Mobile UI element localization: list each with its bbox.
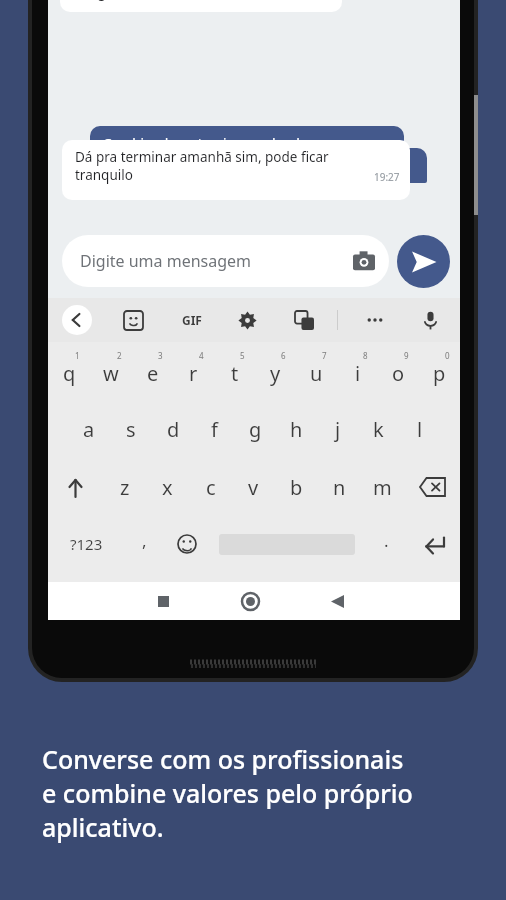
button[interactable]: c (189, 458, 232, 516)
button[interactable] (210, 516, 364, 572)
button[interactable]: k (358, 400, 399, 458)
staticText: a (83, 416, 95, 443)
button[interactable]: 6 (255, 342, 296, 400)
button[interactable]: b (275, 458, 318, 516)
button[interactable]: 0 (419, 342, 460, 400)
button[interactable]: g (235, 400, 276, 458)
button[interactable]: n (318, 458, 361, 516)
staticText: aplicativo. (42, 810, 164, 844)
staticText: t (231, 360, 239, 387)
button[interactable]: More (360, 305, 390, 335)
button[interactable]: v (232, 458, 275, 516)
button[interactable]: ?123 (48, 516, 124, 572)
staticText: j (335, 416, 341, 443)
staticText: b (290, 474, 303, 501)
button[interactable]: z (103, 458, 146, 516)
button[interactable]: Emoji (164, 516, 210, 572)
staticText: g (249, 416, 262, 443)
staticText: 19:25 (315, 138, 340, 151)
staticText: p (433, 360, 446, 387)
staticText: 3 (158, 350, 163, 361)
staticText: q (63, 360, 76, 387)
staticText: ?123 (70, 534, 103, 554)
button[interactable]: Back (320, 584, 354, 618)
button[interactable]: Settings (232, 305, 262, 335)
staticText: c (206, 474, 216, 501)
staticText: , (142, 529, 147, 552)
staticText: k (373, 416, 384, 443)
staticText: r (189, 360, 198, 387)
button[interactable]: 3 (132, 342, 173, 400)
button[interactable]: Translate (289, 305, 319, 335)
staticText: m (373, 474, 392, 501)
button[interactable]: Voice input (415, 305, 445, 335)
staticText: n (333, 474, 346, 501)
button[interactable]: Dá pra terminar amanhã sim, pode ficar (62, 140, 410, 200)
staticText: 7 (322, 350, 327, 361)
button[interactable]: , (124, 516, 164, 572)
button[interactable]: f (194, 400, 235, 458)
button[interactable]: Digite uma mensagem (62, 235, 389, 287)
button[interactable]: m (361, 458, 404, 516)
staticText: tranquilo (75, 166, 133, 184)
staticText: 2 (117, 350, 122, 361)
button[interactable]: Back (62, 305, 92, 335)
button[interactable]: 2 (90, 342, 132, 400)
staticText: e combine valores pelo próprio (42, 776, 413, 810)
button[interactable]: Vai dar pra terminar amanhã? (135, 148, 427, 183)
button[interactable]: Stickers (118, 305, 148, 335)
button[interactable]: Send (397, 235, 450, 288)
button[interactable]: Camera (353, 250, 375, 272)
button[interactable]: 4 (173, 342, 214, 400)
staticText: w (103, 360, 119, 387)
staticText: 0 (445, 350, 450, 361)
staticText: 19:27 (374, 170, 400, 184)
button[interactable]: Recents (146, 584, 180, 618)
staticText: e (147, 360, 159, 387)
staticText: 8 (363, 350, 368, 361)
button[interactable]: x (146, 458, 189, 516)
staticText: s (126, 416, 136, 443)
staticText: y (270, 360, 281, 387)
staticText: Combinado, estarei aguardando (103, 135, 308, 153)
staticText: l (417, 416, 423, 443)
button[interactable]: l (399, 400, 440, 458)
staticText: . (384, 529, 389, 552)
button[interactable]: h (276, 400, 317, 458)
button[interactable]: Backspace (404, 458, 460, 516)
button[interactable]: 9 (378, 342, 419, 400)
staticText: 1 (75, 350, 80, 361)
staticText: x (162, 474, 173, 501)
button[interactable]: 1 (48, 342, 90, 400)
staticText: Digite uma mensagem (80, 250, 252, 272)
staticText: z (120, 474, 130, 501)
button[interactable]: d (152, 400, 194, 458)
button[interactable]: s (110, 400, 152, 458)
staticText: u (310, 360, 323, 387)
staticText: Vai dar pra terminar amanhã? (148, 157, 338, 175)
staticText: 6 (281, 350, 286, 361)
staticText: 4 (199, 350, 204, 361)
staticText: GIF (182, 312, 202, 328)
button[interactable]: 5 (214, 342, 255, 400)
button[interactable]: Shift (48, 458, 103, 516)
staticText: f (211, 416, 218, 443)
button[interactable]: Enter (408, 516, 460, 572)
button[interactable]: a (68, 400, 110, 458)
staticText: Converse com os profissionais (42, 742, 404, 776)
staticText: 9 (404, 350, 409, 361)
staticText: d (167, 416, 180, 443)
button[interactable]: . (364, 516, 408, 572)
button[interactable]: Combinado, estarei aguardando (90, 126, 404, 161)
staticText: Dá pra terminar amanhã sim, pode ficar (75, 148, 329, 166)
button[interactable]: j (317, 400, 358, 458)
staticText: 5 (240, 350, 245, 361)
button[interactable]: GIF (175, 303, 209, 337)
button[interactable]: 7 (296, 342, 337, 400)
staticText: o (392, 360, 405, 387)
button[interactable]: Home (233, 584, 267, 618)
button[interactable]: 8 (337, 342, 378, 400)
staticText: Chego amanhã às 9:00, ok? (72, 0, 252, 1)
